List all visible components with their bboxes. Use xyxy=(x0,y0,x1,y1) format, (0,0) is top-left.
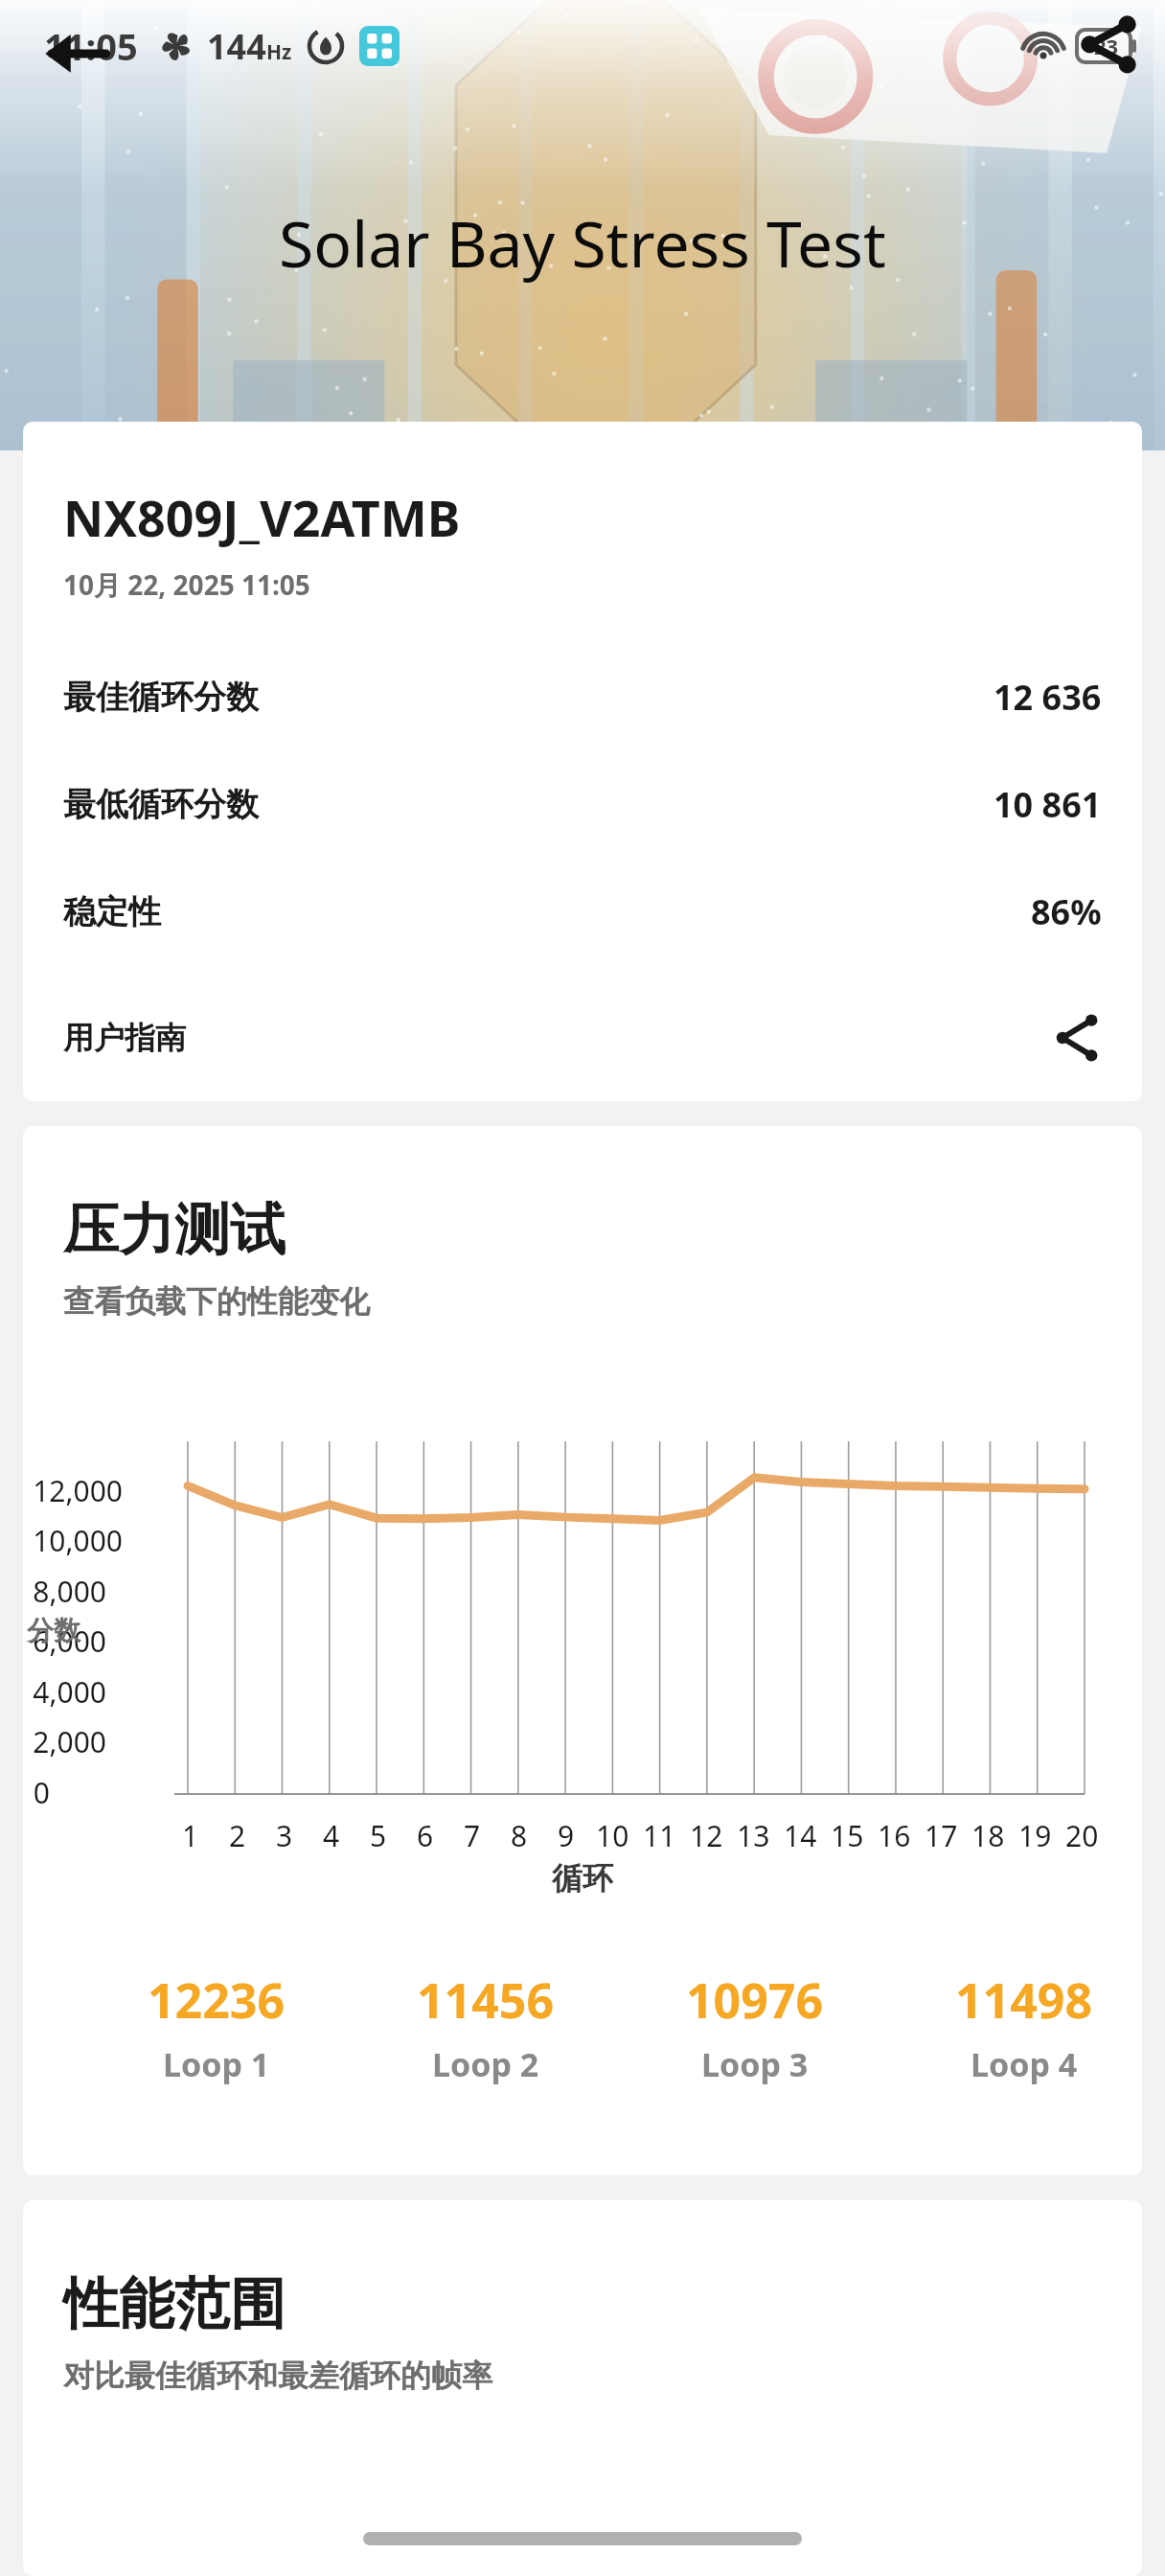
staticText: 16 xyxy=(878,1816,911,1855)
staticText: 11456 xyxy=(417,1967,554,2033)
staticText: 10 xyxy=(596,1816,629,1855)
staticText: 压力测试 xyxy=(63,1195,286,1265)
staticText: 18 xyxy=(971,1816,1005,1855)
staticText: 144 xyxy=(207,23,266,70)
staticText: 12,000 xyxy=(33,1471,123,1510)
staticText: Loop 2 xyxy=(432,2042,539,2086)
button[interactable]: 11456 xyxy=(373,1942,598,2112)
staticText: 15 xyxy=(831,1816,864,1855)
staticText: 查看负载下的性能变化 xyxy=(63,1282,370,1321)
staticText: 86% xyxy=(1031,888,1102,935)
staticText: 4,000 xyxy=(33,1672,106,1712)
staticText: 10976 xyxy=(686,1967,823,2033)
staticText: Loop 4 xyxy=(971,2042,1078,2086)
staticText: 23 xyxy=(1094,32,1119,60)
button[interactable]: 10976 xyxy=(642,1942,867,2112)
button[interactable]: 12236 xyxy=(103,1942,329,2112)
staticText: 性能范围 xyxy=(63,2269,286,2339)
staticText: 分数 xyxy=(27,1614,80,1647)
other: Back xyxy=(44,14,107,78)
staticText: 用户指南 xyxy=(63,1019,186,1057)
staticText: 11 xyxy=(643,1816,676,1855)
staticText: Hz xyxy=(266,38,292,66)
staticText: 7 xyxy=(464,1816,481,1855)
button[interactable]: 稳定性 xyxy=(63,858,1102,965)
staticText: 1 xyxy=(182,1816,199,1855)
staticText: 10 861 xyxy=(994,781,1102,828)
staticText: 最佳循环分数 xyxy=(63,677,259,718)
staticText: 3 xyxy=(276,1816,293,1855)
staticText: 9 xyxy=(558,1816,575,1855)
staticText: NX809J_V2ATMB xyxy=(63,483,461,551)
staticText: 10,000 xyxy=(33,1521,123,1560)
staticText: 10月 22, 2025 11:05 xyxy=(63,566,310,603)
staticText: 13 xyxy=(737,1816,770,1855)
staticText: 19 xyxy=(1018,1816,1052,1855)
button[interactable]: 最佳循环分数 xyxy=(63,643,1102,750)
button[interactable]: 11498 xyxy=(911,1942,1136,2112)
staticText: Solar Bay Stress Test xyxy=(279,199,886,286)
staticText: 12 xyxy=(690,1816,723,1855)
other: Share xyxy=(1075,10,1142,77)
staticText: 11498 xyxy=(955,1967,1092,2033)
staticText: 稳定性 xyxy=(63,891,161,932)
button[interactable]: 用户指南 xyxy=(63,988,1102,1088)
staticText: 12236 xyxy=(148,1967,285,2033)
staticText: 6,000 xyxy=(33,1621,106,1661)
staticText: 14 xyxy=(784,1816,817,1855)
staticText: 6 xyxy=(417,1816,434,1855)
staticText: 5 xyxy=(370,1816,387,1855)
staticText: 2 xyxy=(229,1816,246,1855)
staticText: 循环 xyxy=(552,1859,613,1897)
staticText: Loop 1 xyxy=(163,2042,270,2086)
staticText: 8 xyxy=(511,1816,528,1855)
staticText: 0 xyxy=(33,1773,50,1812)
staticText: 2,000 xyxy=(33,1722,106,1761)
staticText: 对比最佳循环和最差循环的帧率 xyxy=(63,2357,492,2395)
staticText: 4 xyxy=(323,1816,340,1855)
button[interactable]: 最低循环分数 xyxy=(63,750,1102,858)
staticText: Loop 3 xyxy=(701,2042,809,2086)
staticText: 17 xyxy=(925,1816,958,1855)
staticText: 20 xyxy=(1065,1816,1099,1855)
staticText: 11:05 xyxy=(44,21,138,71)
staticText: 12 636 xyxy=(994,674,1102,721)
staticText: 8,000 xyxy=(33,1572,106,1611)
staticText: 最低循环分数 xyxy=(63,784,259,825)
